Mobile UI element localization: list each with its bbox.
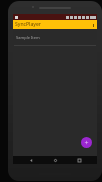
staticText: SyncPlayer <box>15 21 41 28</box>
staticText: Sample Item <box>16 35 40 40</box>
button[interactable]: Recent apps <box>73 156 85 164</box>
button[interactable]: Sample Item <box>13 29 97 45</box>
button[interactable]: More options <box>91 21 95 29</box>
button[interactable]: Back <box>25 156 37 164</box>
button[interactable]: Home <box>49 156 61 164</box>
button[interactable]: Add <box>81 137 92 148</box>
